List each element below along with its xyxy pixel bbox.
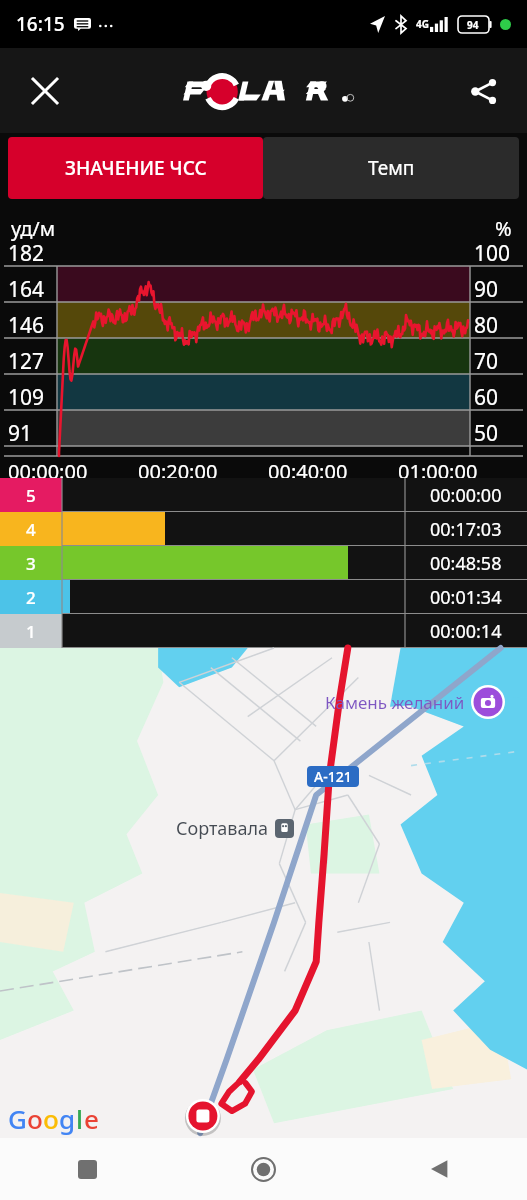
staticText: 4G [416,17,429,31]
staticText: 94 [467,18,479,32]
button[interactable]: ЗНАЧЕНИЕ ЧСС [8,137,263,199]
staticText: 146 [8,311,45,340]
staticText: 00:00:00 [430,483,502,508]
button[interactable]: 5 [0,478,527,512]
button[interactable]: Share [461,68,507,114]
staticText: 127 [8,347,45,376]
staticText: g [59,1101,76,1136]
staticText: Темп [368,155,415,181]
staticText: 00:40:00 [268,458,398,485]
staticText: 01:00:00 [398,458,518,485]
staticText: 164 [8,275,45,304]
button[interactable]: 4 [0,512,527,546]
staticText: 00:20:00 [138,458,268,485]
staticText: 70 [474,347,499,376]
staticText: 16:15 [16,11,65,37]
button[interactable]: 1 [0,614,527,648]
staticText: 50 [474,419,499,448]
staticText: 5 [26,484,36,507]
button[interactable]: Close [22,68,68,114]
button[interactable]: Камень желаний [471,685,505,719]
staticText: 60 [474,383,499,412]
staticText: 2 [26,586,36,609]
button[interactable]: Recents [0,1138,175,1200]
staticText: % [495,215,512,242]
button[interactable]: Темп [263,137,519,199]
button[interactable]: Back [351,1138,527,1200]
staticText: 90 [474,275,499,304]
staticText: o [27,1101,43,1136]
staticText: Сортавала [176,816,269,841]
staticText: e [84,1101,99,1136]
staticText: 4 [26,518,36,541]
staticText: o [43,1101,59,1136]
staticText: 91 [8,419,33,448]
staticText: 00:00:00 [8,458,138,485]
button[interactable]: 3 [0,546,527,580]
button[interactable]: 2 [0,580,527,614]
staticText: ЗНАЧЕНИЕ ЧСС [65,155,207,181]
staticText: 00:48:58 [430,551,502,576]
button[interactable]: Home [175,1138,351,1200]
staticText: A-121 [314,767,352,786]
staticText: G [8,1101,27,1136]
staticText: 00:00:14 [430,619,502,644]
staticText: Камень желаний [325,691,465,714]
staticText: 80 [474,311,499,340]
staticText: l [76,1101,84,1136]
staticText: 1 [26,620,36,643]
staticText: 3 [26,552,36,575]
staticText: уд/м [11,215,56,242]
staticText: 109 [8,383,45,412]
staticText: 00:01:34 [430,585,502,610]
staticText: 00:17:03 [430,517,502,542]
staticText: 100 [474,239,511,268]
staticText: 182 [8,239,45,268]
